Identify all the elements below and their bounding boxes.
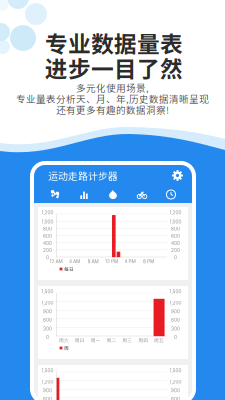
- staticText: 400: [171, 240, 180, 246]
- staticText: 900: [171, 309, 180, 314]
- staticText: 4 PM: [124, 259, 135, 264]
- staticText: 周一: [91, 338, 101, 343]
- staticText: 200: [43, 248, 52, 253]
- staticText: 专业数据量表: [45, 26, 183, 59]
- staticText: 1,500: [41, 289, 53, 294]
- staticText: 600: [43, 317, 52, 323]
- staticText: 8 AM: [87, 259, 98, 264]
- staticText: 600: [171, 317, 180, 323]
- staticText: 300: [43, 326, 52, 331]
- staticText: 运动走路计步器: [48, 168, 118, 183]
- staticText: 周: [64, 344, 69, 351]
- staticText: 800: [43, 226, 52, 232]
- staticText: 8 PM: [143, 259, 154, 264]
- staticText: 800: [171, 226, 180, 232]
- staticText: 0: [174, 255, 177, 260]
- staticText: 0: [46, 255, 49, 260]
- staticText: 1,200: [169, 379, 181, 385]
- staticText: 1,200: [169, 210, 181, 215]
- staticText: 12 AM: [49, 259, 62, 264]
- staticText: 1,000: [169, 219, 181, 224]
- staticText: 300: [171, 326, 180, 331]
- staticText: 周五: [154, 338, 164, 343]
- staticText: 12 PM: [105, 259, 118, 264]
- staticText: 周二: [106, 338, 116, 343]
- staticText: 600: [171, 396, 180, 400]
- staticText: 1,500: [169, 289, 181, 294]
- staticText: 900: [171, 388, 180, 393]
- staticText: 周日: [75, 338, 85, 343]
- button[interactable]: Charts: [76, 187, 92, 201]
- staticText: 进步一目了然: [45, 51, 183, 84]
- staticText: 0: [174, 334, 177, 340]
- button[interactable]: Settings: [171, 169, 184, 182]
- staticText: 多元化使用场景,: [76, 80, 149, 94]
- staticText: 1,000: [41, 219, 53, 224]
- staticText: 400: [43, 240, 52, 246]
- button[interactable]: Calories: [105, 187, 121, 201]
- staticText: 900: [43, 388, 52, 393]
- button[interactable]: History: [163, 187, 179, 201]
- staticText: 周四: [138, 338, 148, 343]
- staticText: 200: [171, 248, 180, 253]
- staticText: 周六: [59, 338, 69, 343]
- staticText: 1,200: [41, 210, 53, 215]
- staticText: 0: [46, 334, 49, 340]
- staticText: 专业量表分析天、月、年,历史数据清晰呈现: [16, 91, 209, 105]
- staticText: 1,500: [41, 368, 53, 373]
- staticText: 1,500: [169, 368, 181, 373]
- staticText: 1,200: [41, 300, 53, 306]
- staticText: 每日: [64, 265, 74, 272]
- staticText: 1,200: [41, 379, 53, 385]
- button[interactable]: Cycling: [134, 187, 150, 201]
- staticText: 600: [43, 233, 52, 239]
- staticText: 1,200: [169, 300, 181, 306]
- staticText: 4 AM: [69, 259, 80, 264]
- staticText: 600: [43, 396, 52, 400]
- staticText: 600: [171, 233, 180, 239]
- staticText: 900: [43, 309, 52, 314]
- staticText: 周三: [122, 338, 132, 343]
- staticText: 还有更多有趣的数据洞察!: [56, 102, 169, 116]
- button[interactable]: Steps: [47, 187, 63, 201]
